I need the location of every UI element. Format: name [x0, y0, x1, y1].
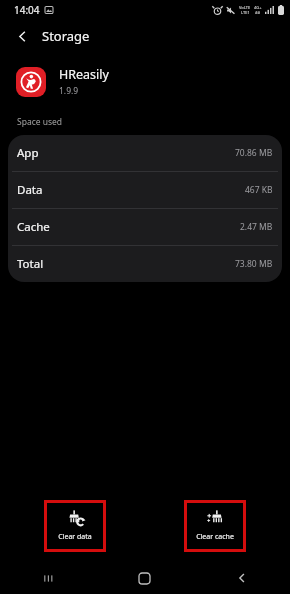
staticText: Storage	[42, 27, 90, 45]
staticText: HReasily	[59, 66, 109, 83]
staticText: 70.86 MB	[235, 147, 273, 159]
staticText: VoLTE	[239, 5, 251, 10]
button[interactable]: Cache	[8, 209, 282, 246]
staticText: ##	[255, 10, 261, 15]
button[interactable]: Home	[96, 562, 193, 594]
button[interactable]: Back	[8, 22, 36, 50]
staticText: Clear data	[58, 532, 92, 542]
staticText: Cache	[17, 219, 50, 235]
staticText: 73.80 MB	[235, 258, 273, 270]
button[interactable]: Clear cache	[184, 500, 246, 552]
staticText: 4G+	[254, 5, 262, 10]
staticText: 14:04	[14, 3, 40, 17]
staticText: App	[17, 145, 39, 161]
staticText: Total	[17, 256, 44, 272]
staticText: Space used	[17, 116, 63, 128]
button[interactable]: Back	[193, 562, 290, 594]
staticText: LTE1	[241, 10, 250, 15]
staticText: Data	[17, 182, 43, 198]
staticText: 467 KB	[245, 184, 273, 196]
button[interactable]: Total	[8, 246, 282, 282]
staticText: Clear cache	[196, 532, 234, 542]
button[interactable]: Recent apps	[0, 562, 96, 594]
button[interactable]: Clear data	[44, 500, 106, 552]
staticText: 1.9.9	[59, 85, 79, 97]
staticText: 2.47 MB	[240, 221, 273, 233]
button[interactable]: App	[8, 135, 282, 172]
button[interactable]: Data	[8, 172, 282, 209]
